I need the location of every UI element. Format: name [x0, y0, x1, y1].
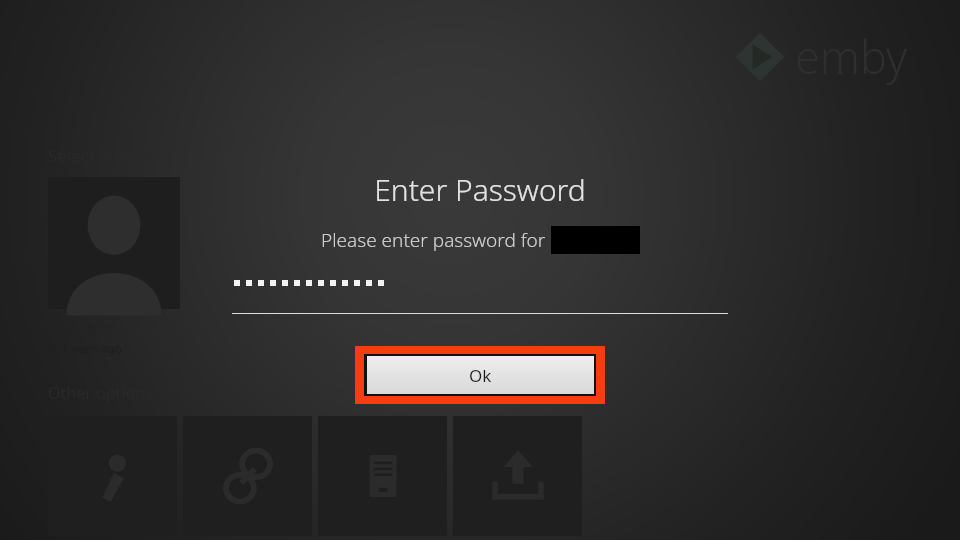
button[interactable]: Select user profile — [48, 177, 180, 309]
staticText: emby — [795, 26, 908, 87]
staticText: Enter Password — [374, 169, 586, 210]
staticText: Please enter password for — [321, 227, 551, 253]
button[interactable]: Ok — [355, 346, 605, 404]
staticText: Ok — [469, 364, 492, 387]
